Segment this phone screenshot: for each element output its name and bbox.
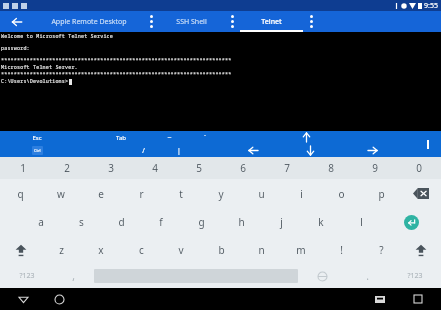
staticText: m — [296, 243, 306, 257]
button[interactable]: b — [201, 236, 241, 264]
button[interactable]: Arrow up — [291, 131, 321, 144]
button[interactable]: Back — [0, 11, 34, 32]
button[interactable]: i — [281, 179, 321, 208]
button[interactable]: q — [0, 179, 41, 208]
button[interactable]: 3 — [89, 157, 133, 179]
button[interactable]: o — [321, 179, 361, 208]
button[interactable]: 5 — [177, 157, 221, 179]
button[interactable]: l — [341, 208, 381, 236]
button[interactable]: y — [201, 179, 241, 208]
button[interactable]: j — [261, 208, 301, 236]
staticText: 0 — [416, 161, 422, 175]
button[interactable]: t — [161, 179, 201, 208]
button[interactable]: v — [161, 236, 201, 264]
button[interactable]: 1 — [0, 157, 45, 179]
button[interactable]: Ctrl — [24, 144, 50, 157]
staticText: 9:55 — [424, 1, 438, 11]
button[interactable]: Hide keyboard — [371, 290, 389, 308]
staticText: ~ — [167, 133, 172, 143]
staticText: ?123 — [19, 271, 35, 281]
button[interactable]: 9 — [353, 157, 397, 179]
button[interactable]: ?123 — [0, 264, 53, 288]
staticText: Apple Remote Desktop — [51, 17, 127, 27]
staticText: g — [198, 215, 205, 229]
button[interactable]: Arrow down — [295, 144, 325, 157]
button[interactable]: 0 — [397, 157, 441, 179]
button[interactable]: r — [121, 179, 161, 208]
button[interactable]: SSH Shell — [159, 11, 224, 32]
button[interactable]: Apple Remote Desktop — [34, 11, 143, 32]
staticText: r — [139, 187, 144, 201]
button[interactable]: ~ — [158, 131, 180, 144]
button[interactable]: Arrow left — [238, 144, 268, 157]
staticText: Microsoft Telnet Server. — [1, 64, 78, 71]
staticText: ! — [340, 243, 343, 257]
button[interactable]: ?123 — [388, 264, 441, 288]
button[interactable]: 8 — [309, 157, 353, 179]
button[interactable]: More options — [143, 11, 159, 32]
staticText: v — [178, 243, 184, 257]
staticText: C:\Users\Devolutions> — [1, 78, 69, 85]
button[interactable]: Shift — [0, 236, 41, 264]
button[interactable]: Telnet — [240, 11, 303, 32]
button[interactable]: Backspace — [401, 179, 441, 208]
button[interactable]: x — [81, 236, 121, 264]
button[interactable]: g — [181, 208, 221, 236]
staticText: o — [338, 187, 345, 201]
staticText: Esc — [32, 134, 42, 142]
button[interactable]: / — [132, 144, 154, 157]
staticText: 8 — [328, 161, 334, 175]
button[interactable]: Shift — [401, 236, 441, 264]
staticText: password: — [1, 45, 30, 52]
staticText: Ctrl — [34, 148, 41, 153]
button[interactable]: More options — [303, 11, 319, 32]
button[interactable]: f — [141, 208, 181, 236]
button[interactable]: a — [21, 208, 61, 236]
button[interactable]: 7 — [265, 157, 309, 179]
button[interactable]: Arrow right — [357, 144, 387, 157]
button[interactable]: Change keyboard — [298, 264, 347, 288]
button[interactable]: 6 — [221, 157, 265, 179]
button[interactable]: | — [168, 144, 190, 157]
button[interactable]: Enter — [381, 208, 441, 236]
button[interactable]: ! — [321, 236, 361, 264]
button[interactable]: h — [221, 208, 261, 236]
button[interactable]: s — [61, 208, 101, 236]
button[interactable]: Esc — [24, 131, 50, 144]
button[interactable]: Back — [14, 290, 32, 308]
button[interactable]: ? — [361, 236, 401, 264]
button[interactable]: Tab — [108, 131, 134, 144]
staticText: ****************************************… — [1, 57, 232, 64]
button[interactable]: Recent apps — [409, 290, 427, 308]
staticText: 4 — [152, 161, 158, 175]
button[interactable]: m — [281, 236, 321, 264]
staticText: 9 — [372, 161, 378, 175]
staticText: SSH Shell — [176, 17, 207, 27]
button[interactable]: 4 — [133, 157, 177, 179]
button[interactable]: n — [241, 236, 281, 264]
button[interactable]: e — [81, 179, 121, 208]
button[interactable]: w — [41, 179, 81, 208]
button[interactable]: k — [301, 208, 341, 236]
button[interactable]: p — [361, 179, 401, 208]
button[interactable]: 2 — [45, 157, 89, 179]
staticText: x — [98, 243, 104, 257]
button[interactable]: Home — [50, 290, 68, 308]
staticText: 1 — [20, 161, 26, 175]
button[interactable]: d — [101, 208, 141, 236]
staticText: w — [57, 187, 65, 201]
staticText: | — [177, 146, 181, 156]
button[interactable]: z — [41, 236, 81, 264]
staticText: 5 — [196, 161, 202, 175]
button[interactable]: More options — [224, 11, 240, 32]
staticText: Welcome to Microsoft Telnet Service — [1, 33, 114, 40]
button[interactable]: c — [121, 236, 161, 264]
staticText: t — [179, 187, 183, 201]
button[interactable]: u — [241, 179, 281, 208]
button[interactable]: ` — [194, 131, 216, 144]
staticText: i — [300, 187, 303, 201]
